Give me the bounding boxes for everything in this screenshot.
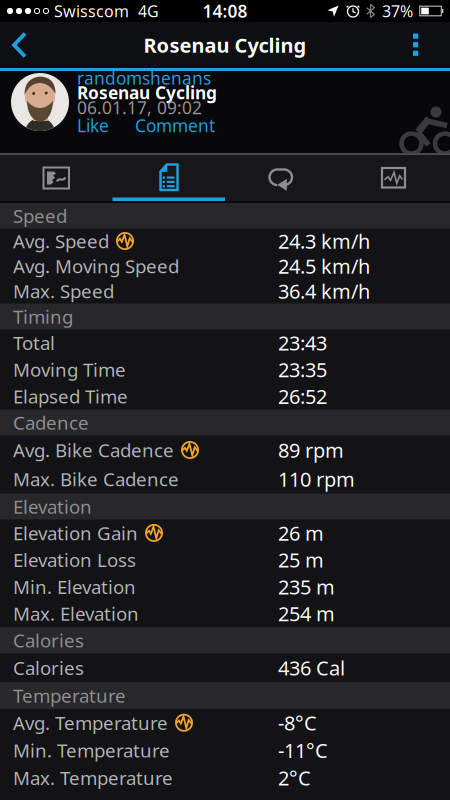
button[interactable]: Back <box>7 30 41 59</box>
staticText: Avg. Temperature <box>13 710 168 735</box>
staticText: 23:43 <box>278 330 327 356</box>
staticText: 26:52 <box>278 383 327 409</box>
button[interactable]: randomshenans <box>77 66 211 89</box>
button[interactable]: Snapshot <box>0 155 112 201</box>
staticText: Calories <box>13 628 84 653</box>
staticText: Max. Speed <box>13 279 114 303</box>
staticText: Speed <box>13 203 67 228</box>
staticText: 23:35 <box>278 356 327 383</box>
staticText: Calories <box>13 655 84 680</box>
staticText: Avg. Speed <box>13 229 109 253</box>
staticText: Rosenau Cycling <box>77 81 217 104</box>
staticText: 14:08 <box>202 0 247 22</box>
staticText: Like <box>77 114 109 137</box>
staticText: 254 m <box>278 600 335 627</box>
staticText: Cadence <box>13 410 89 435</box>
button[interactable]: More options <box>396 30 432 59</box>
staticText: Rosenau Cycling <box>143 32 306 58</box>
staticText: Elapsed Time <box>13 384 128 409</box>
button[interactable]: Laps <box>225 155 337 201</box>
staticText: 26 m <box>278 520 324 546</box>
staticText: Timing <box>13 304 73 329</box>
button[interactable]: Like <box>77 114 109 137</box>
button[interactable]: Details <box>112 155 225 201</box>
staticText: randomshenans <box>77 66 211 89</box>
staticText: 24.5 km/h <box>278 253 370 279</box>
staticText: 25 m <box>278 547 324 573</box>
staticText: Total <box>13 330 55 355</box>
staticText: Max. Elevation <box>13 601 139 626</box>
button[interactable]: Charts <box>337 155 450 201</box>
staticText: 4G <box>138 0 159 22</box>
staticText: Elevation <box>13 494 92 519</box>
staticText: 24.3 km/h <box>278 228 370 254</box>
staticText: -11°C <box>278 737 328 764</box>
staticText: Temperature <box>13 683 126 708</box>
staticText: Avg. Moving Speed <box>13 254 179 278</box>
staticText: 89 rpm <box>278 437 344 463</box>
staticText: Swisscom <box>54 0 129 22</box>
staticText: 436 Cal <box>278 654 345 681</box>
staticText: Moving Time <box>13 357 126 382</box>
button[interactable]: Comment <box>135 114 215 137</box>
staticText: 36.4 km/h <box>278 278 370 304</box>
staticText: Avg. Bike Cadence <box>13 438 174 462</box>
staticText: Max. Temperature <box>13 765 173 790</box>
staticText: Min. Temperature <box>13 738 170 763</box>
staticText: Elevation Gain <box>13 521 138 545</box>
staticText: -8°C <box>278 709 317 736</box>
staticText: 37% <box>382 0 413 22</box>
staticText: Comment <box>135 114 215 137</box>
staticText: 2°C <box>278 764 311 791</box>
staticText: Min. Elevation <box>13 574 136 599</box>
staticText: Elevation Loss <box>13 547 136 572</box>
staticText: Max. Bike Cadence <box>13 467 179 491</box>
staticText: 06.01.17, 09:02 <box>77 96 202 119</box>
staticText: 235 m <box>278 573 335 600</box>
staticText: 110 rpm <box>278 466 355 492</box>
